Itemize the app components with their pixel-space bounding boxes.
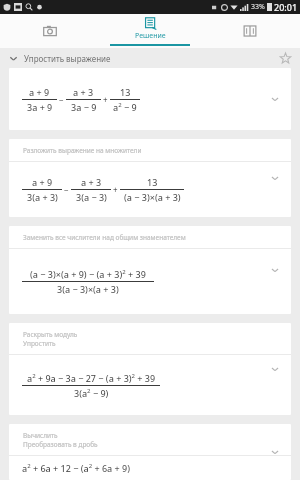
- staticText: +: [113, 184, 118, 195]
- staticText: (a − 3)×(a + 9) − (a + 3)2 + 39: [30, 268, 146, 280]
- staticText: Раскрыть модуль Упростить: [23, 330, 78, 348]
- staticText: Вычислить Преобразовать в дробь: [23, 431, 98, 449]
- button[interactable]: Book: [200, 14, 300, 48]
- staticText: a2 + 6a + 12 − (a2 + 6a + 9): [22, 462, 130, 474]
- staticText: 3(a2 − 9): [74, 387, 109, 399]
- staticText: a2 + 9a − 3a − 27 − (a + 3)2 + 39: [27, 372, 156, 384]
- button[interactable]: Expand step: [267, 444, 283, 460]
- staticText: +: [103, 94, 108, 105]
- button[interactable]: Упростить выражение: [0, 48, 300, 68]
- button[interactable]: Разложить выражение на множители: [9, 139, 291, 217]
- button[interactable]: Вычислить Преобразовать в дробь: [9, 424, 291, 480]
- staticText: Заменить все числители над общим знамена…: [23, 233, 186, 242]
- staticText: a + 9: [29, 86, 50, 98]
- button[interactable]: a + 9: [9, 68, 291, 130]
- staticText: 3(a − 3)×(a + 3): [57, 283, 119, 295]
- staticText: −: [64, 184, 69, 195]
- button[interactable]: Expand step: [267, 91, 283, 107]
- staticText: 3(a − 3): [76, 191, 107, 203]
- staticText: a + 3: [73, 86, 94, 98]
- button[interactable]: Expand step: [267, 170, 283, 186]
- button[interactable]: Favorite: [275, 48, 295, 68]
- button[interactable]: Решение: [100, 14, 200, 48]
- staticText: −: [59, 94, 64, 105]
- button[interactable]: Expand step: [267, 361, 283, 377]
- staticText: 3a − 9: [71, 101, 97, 113]
- staticText: a + 9: [32, 176, 53, 188]
- button[interactable]: Camera: [0, 14, 100, 48]
- staticText: 3a + 9: [27, 101, 53, 113]
- staticText: 13: [147, 176, 158, 188]
- staticText: 13: [120, 86, 131, 98]
- button[interactable]: Expand step: [267, 262, 283, 278]
- button[interactable]: Раскрыть модуль Упростить: [9, 323, 291, 415]
- staticText: Решение: [135, 31, 166, 41]
- staticText: Упростить выражение: [24, 53, 111, 64]
- staticText: a2 − 9: [113, 101, 137, 113]
- staticText: 3(a + 3): [27, 191, 58, 203]
- staticText: 33%: [251, 2, 265, 12]
- staticText: a + 3: [81, 176, 102, 188]
- button[interactable]: Заменить все числители над общим знамена…: [9, 226, 291, 314]
- staticText: 20:01: [274, 1, 298, 13]
- staticText: (a − 3)×(a + 3): [124, 191, 181, 203]
- staticText: Разложить выражение на множители: [23, 146, 142, 155]
